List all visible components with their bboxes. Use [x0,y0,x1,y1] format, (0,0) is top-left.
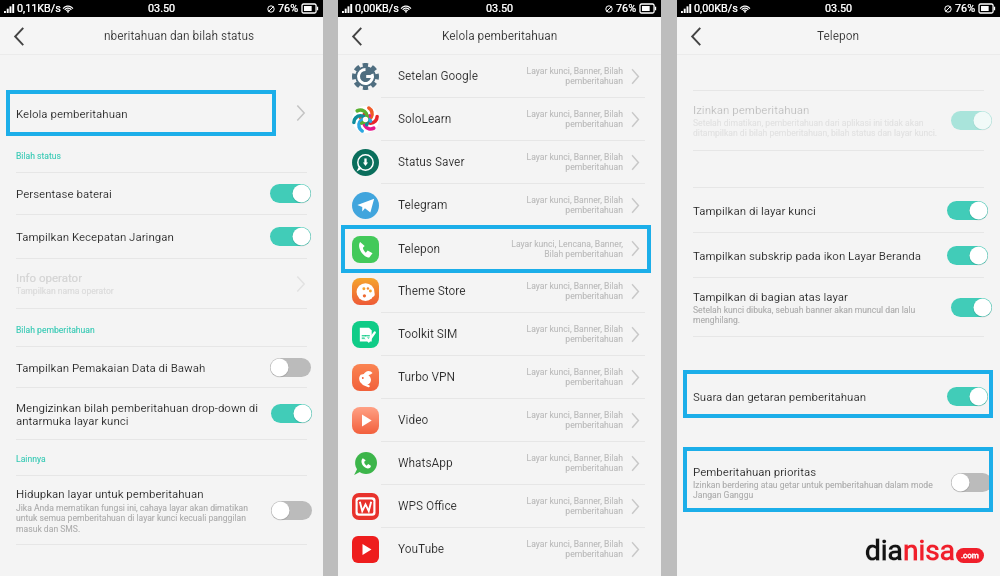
button[interactable] [270,227,311,246]
staticText: Layar kunci, Banner, Bilah pemberitahuan [526,367,623,387]
button[interactable]: Back [677,17,715,55]
staticText: Setelan Google [398,69,526,83]
button[interactable]: Info operator [0,259,323,308]
staticText: SoloLearn [398,112,526,126]
button[interactable]: Persentase baterai [0,173,323,214]
staticText: Telepon [398,242,511,256]
staticText: Layar kunci, Banner, Bilah pemberitahuan [526,324,623,344]
staticText: Theme Store [398,284,526,298]
button[interactable] [947,387,988,406]
staticText: Layar kunci, Banner, Bilah pemberitahuan [526,496,623,516]
staticText: Pemberitahuan prioritas [693,465,817,478]
staticText: Jika Anda mematikan fungsi ini, cahaya l… [16,503,248,534]
staticText: Layar kunci, Lencana, Banner, Bilah pemb… [511,239,623,259]
staticText: 03.50 [486,2,514,15]
button[interactable] [947,201,988,220]
staticText: 0,00KB/s [355,2,399,15]
staticText: Tampilkan subskrip pada ikon Layar Beran… [693,249,941,262]
button[interactable]: WhatsApp [338,442,661,484]
button[interactable]: Pemberitahuan prioritas [677,450,1000,515]
staticText: Tampilkan Pemakaian Data di Bawah [16,361,264,374]
staticText: 0,11KB/s [17,2,61,15]
staticText: Layar kunci, Banner, Bilah pemberitahuan [526,281,623,301]
staticText: nisa [903,534,955,567]
staticText: Mengizinkan bilah pemberitahuan drop-dow… [16,401,259,414]
staticText: Izinkan berdering atau getar untuk pembe… [693,480,933,500]
button[interactable]: Tampilkan Kecepatan Jaringan [0,215,323,258]
staticText: .com [961,551,979,560]
button[interactable] [951,111,992,130]
button[interactable]: SoloLearn [338,98,661,140]
staticText: YouTube [398,542,526,556]
staticText: Setelah dimatikan, pemberitahuan dari ap… [693,118,938,138]
button[interactable]: Telegram [338,184,661,226]
staticText: Bilah status [16,151,61,161]
button[interactable] [951,298,992,317]
staticText: Kelola pemberitahuan [16,107,128,120]
staticText: WhatsApp [398,456,526,470]
staticText: Layar kunci, Banner, Bilah pemberitahuan [526,410,623,430]
staticText: 76% [278,2,299,15]
staticText: Persentase baterai [16,187,264,200]
staticText: Telegram [398,198,526,212]
staticText: Telepon [817,29,860,43]
staticText: 76% [616,2,637,15]
staticText: WPS Office [398,499,526,513]
staticText: Status Saver [398,155,526,169]
staticText: Turbo VPN [398,370,526,384]
staticText: Toolkit SIM [398,327,526,341]
button[interactable]: Tampilkan di bagian atas layar [677,278,1000,336]
button[interactable]: Kelola pemberitahuan [0,87,323,139]
staticText: Izinkan pemberitahuan [693,103,810,116]
button[interactable]: Suara dan getaran pemberitahuan [677,372,1000,420]
staticText: nberitahuan dan bilah status [104,29,255,43]
button[interactable]: Setelan Google [338,55,661,97]
staticText: Tampilkan di layar kunci [693,204,941,217]
staticText: dia [865,534,903,567]
staticText: 03.50 [825,2,853,15]
button[interactable]: Toolkit SIM [338,313,661,355]
button[interactable]: Tampilkan subskrip pada ikon Layar Beran… [677,233,1000,277]
button[interactable] [271,501,312,520]
staticText: Kelola pemberitahuan [442,29,558,43]
button[interactable]: Video [338,399,661,441]
staticText: antarmuka layar kunci [16,414,129,427]
staticText: Layar kunci, Banner, Bilah pemberitahuan [526,539,623,559]
staticText: Layar kunci, Banner, Bilah pemberitahuan [526,195,623,215]
staticText: 76% [955,2,976,15]
button[interactable]: Theme Store [338,270,661,312]
button[interactable]: Mengizinkan bilah pemberitahuan drop-dow… [0,388,323,439]
button[interactable] [947,246,988,265]
button[interactable]: Hidupkan layar untuk pemberitahuan [0,476,323,544]
button[interactable]: Tampilkan di layar kunci [677,188,1000,232]
button[interactable]: Back [338,17,376,55]
button[interactable]: Telepon [338,227,661,270]
staticText: Layar kunci, Banner, Bilah pemberitahuan [526,152,623,172]
button[interactable] [951,473,992,492]
staticText: Layar kunci, Banner, Bilah pemberitahuan [526,453,623,473]
staticText: 0,00KB/s [694,2,738,15]
button[interactable]: Back [0,17,38,55]
staticText: 03.50 [148,2,176,15]
staticText: Tampilkan nama operator [16,286,114,296]
staticText: Layar kunci, Banner, Bilah pemberitahuan [526,109,623,129]
button[interactable] [270,184,311,203]
button[interactable]: WPS Office [338,485,661,527]
button[interactable]: Turbo VPN [338,356,661,398]
staticText: Tampilkan di bagian atas layar [693,290,849,303]
staticText: Video [398,413,526,427]
button[interactable] [270,358,311,377]
staticText: Lainnya [16,454,46,464]
button[interactable]: Status Saver [338,141,661,183]
button[interactable] [271,404,312,423]
staticText: Bilah pemberitahuan [16,325,95,335]
staticText: Layar kunci, Banner, Bilah pemberitahuan [526,66,623,86]
staticText: Setelah kunci dibuka, sebuah banner akan… [693,305,916,325]
button[interactable]: Izinkan pemberitahuan [677,91,1000,150]
staticText: Info operator [16,271,83,284]
staticText: Suara dan getaran pemberitahuan [693,390,941,403]
button[interactable]: Tampilkan Pemakaian Data di Bawah [0,347,323,387]
button[interactable]: YouTube [338,528,661,570]
staticText: Hidupkan layar untuk pemberitahuan [16,487,204,500]
staticText: Tampilkan Kecepatan Jaringan [16,230,264,243]
